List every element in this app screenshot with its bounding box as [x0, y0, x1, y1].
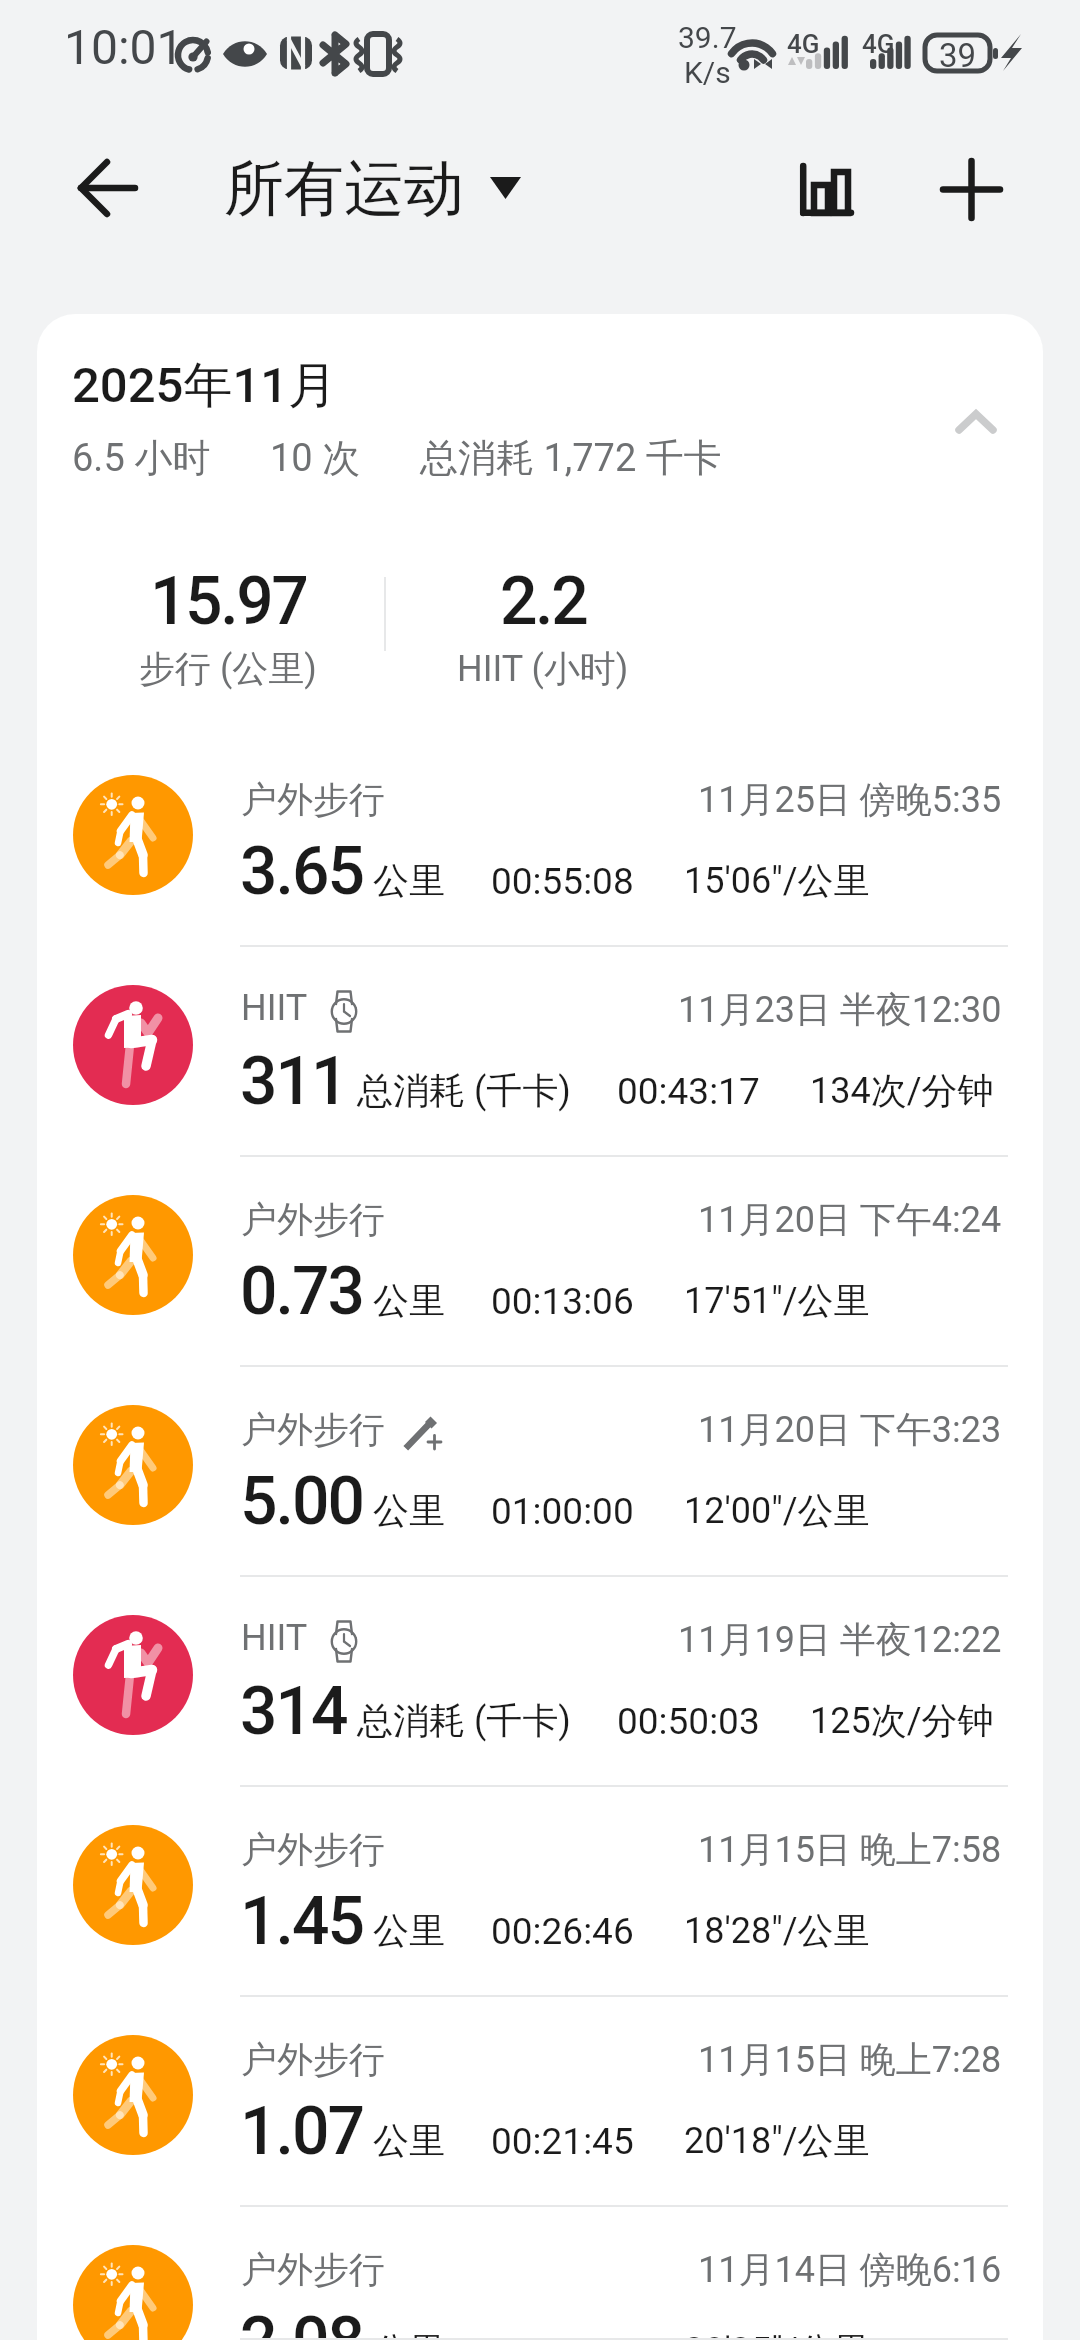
staticText: 2.08 [240, 2303, 363, 2340]
staticText: 00:26:46 [491, 1910, 634, 1953]
staticText: 公里 [373, 1278, 445, 1323]
staticText: K/s [684, 55, 731, 90]
staticText: 户外步行 [241, 1827, 385, 1872]
staticText: 户外步行 [241, 1197, 385, 1242]
staticText: 11月15日 晚上7:28 [698, 2037, 1002, 2082]
staticText: 01:00:00 [491, 1490, 634, 1533]
button[interactable]: Back [53, 133, 163, 243]
staticText: 5.00 [240, 1463, 363, 1540]
staticText: 4G [862, 29, 895, 59]
staticText: 2.2 [500, 563, 587, 640]
button[interactable]: HIIT [37, 947, 1043, 1157]
staticText: 11月19日 半夜12:22 [678, 1617, 1002, 1662]
button[interactable]: Statistics [772, 134, 882, 244]
staticText: 125次/分钟 [810, 1698, 994, 1743]
staticText: 公里 [373, 1908, 445, 1953]
staticText: 11月14日 傍晚6:16 [698, 2247, 1002, 2292]
staticText: 15'06"/公里 [684, 858, 870, 903]
staticText: 步行 (公里) [139, 646, 317, 691]
staticText: 11月25日 傍晚5:35 [698, 777, 1002, 822]
staticText: 1.45 [240, 1883, 363, 1960]
staticText: 3.65 [240, 833, 363, 910]
staticText: 17'51"/公里 [684, 1278, 870, 1323]
staticText: HIIT [241, 987, 308, 1029]
staticText: 所有运动 [224, 151, 464, 227]
staticText: 00:55:08 [491, 860, 634, 903]
staticText: 00:13:06 [491, 1280, 634, 1323]
button[interactable]: 户外步行 [37, 1157, 1043, 1367]
button[interactable]: HIIT [37, 1577, 1043, 1787]
button[interactable]: 户外步行 [37, 1997, 1043, 2207]
staticText: 公里 [373, 2328, 445, 2340]
button[interactable]: 户外步行 [37, 737, 1043, 947]
button[interactable]: 户外步行 [37, 1367, 1043, 1577]
staticText: 39.7 [678, 20, 737, 55]
staticText: 39 [939, 36, 977, 75]
button[interactable]: 户外步行 [37, 2207, 1043, 2340]
staticText: 总消耗 (千卡) [357, 1068, 571, 1113]
staticText: 20'35"/公里 [684, 2328, 870, 2340]
staticText: 314 [240, 1673, 347, 1750]
staticText: 134次/分钟 [810, 1068, 994, 1113]
button[interactable]: 户外步行 [37, 1787, 1043, 1997]
staticText: HIIT [241, 1617, 308, 1659]
staticText: 12'00"/公里 [684, 1488, 870, 1533]
staticText: 4G [787, 29, 820, 59]
staticText: 总消耗 (千卡) [357, 1698, 571, 1743]
staticText: 11月23日 半夜12:30 [678, 987, 1002, 1032]
staticText: 311 [240, 1043, 347, 1120]
button[interactable]: 所有运动 [224, 151, 521, 227]
staticText: 18'28"/公里 [684, 1908, 870, 1953]
staticText: 户外步行 [241, 1407, 385, 1452]
staticText: 11月15日 晚上7:58 [698, 1827, 1002, 1872]
staticText: 公里 [373, 858, 445, 903]
staticText: 2025年11月 [72, 355, 338, 417]
staticText: 20'18"/公里 [684, 2118, 870, 2163]
staticText: 00:21:45 [491, 2120, 634, 2163]
staticText: 0.73 [240, 1253, 363, 1330]
staticText: 公里 [373, 1488, 445, 1533]
staticText: HIIT (小时) [457, 646, 629, 691]
staticText: 户外步行 [241, 2037, 385, 2082]
staticText: 总消耗 1,772 千卡 [420, 434, 722, 482]
staticText: 10 次 [270, 434, 361, 482]
staticText: 公里 [373, 2118, 445, 2163]
staticText: 00:43:17 [617, 1070, 760, 1113]
staticText: 00:50:03 [617, 1700, 760, 1743]
staticText: 15.97 [150, 563, 307, 640]
staticText: 00:42:48 [491, 2330, 634, 2340]
staticText: 11月20日 下午3:23 [698, 1407, 1002, 1452]
staticText: 11月20日 下午4:24 [698, 1197, 1002, 1242]
staticText: 1.07 [240, 2093, 363, 2170]
staticText: 10:01 [64, 19, 184, 75]
button[interactable]: Collapse [926, 372, 1026, 472]
staticText: 6.5 小时 [72, 434, 211, 482]
button[interactable]: Add [916, 134, 1026, 244]
staticText: 户外步行 [241, 777, 385, 822]
staticText: 户外步行 [241, 2247, 385, 2292]
